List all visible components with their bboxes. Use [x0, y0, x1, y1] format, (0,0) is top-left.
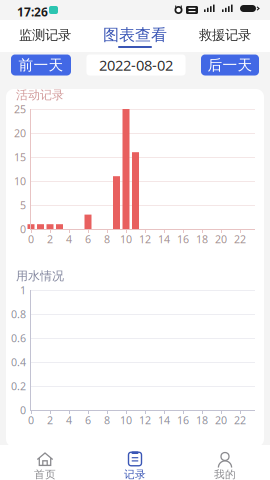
staticText: 记录: [124, 468, 146, 480]
staticText: 0: [28, 413, 34, 427]
staticText: 8: [104, 232, 110, 246]
staticText: 18: [196, 413, 208, 427]
staticText: 4: [66, 232, 72, 246]
staticText: 14: [158, 232, 170, 246]
staticText: 用水情况: [16, 269, 64, 283]
staticText: 图表查看: [103, 25, 167, 45]
staticText: 16: [177, 413, 189, 427]
staticText: 0.2: [11, 379, 26, 393]
staticText: 10: [120, 232, 132, 246]
staticText: 0.8: [11, 307, 26, 321]
button[interactable]: 救援记录: [180, 20, 270, 50]
staticText: 5: [20, 198, 26, 212]
staticText: 8: [104, 413, 110, 427]
button[interactable]: 前一天: [11, 54, 71, 75]
staticText: 17:26: [17, 4, 48, 20]
staticText: 0: [20, 403, 26, 417]
staticText: 2022-08-02: [99, 55, 173, 75]
staticText: 14: [158, 413, 170, 427]
staticText: 监测记录: [19, 27, 71, 43]
staticText: 12: [139, 232, 151, 246]
staticText: 首页: [34, 468, 56, 480]
staticText: 1: [20, 283, 26, 297]
staticText: 22: [234, 232, 246, 246]
staticText: 救援记录: [199, 27, 251, 43]
staticText: 12: [139, 413, 151, 427]
staticText: 20: [215, 413, 227, 427]
staticText: 22: [234, 413, 246, 427]
staticText: 20: [215, 232, 227, 246]
staticText: 2: [47, 232, 53, 246]
staticText: 15: [14, 150, 26, 164]
button[interactable]: 我的: [180, 452, 270, 480]
staticText: 18: [196, 232, 208, 246]
staticText: 10: [14, 174, 26, 188]
staticText: 6: [85, 413, 91, 427]
staticText: 我的: [214, 468, 236, 480]
staticText: 活动记录: [16, 88, 64, 102]
staticText: 前一天: [18, 56, 63, 74]
staticText: 4: [66, 413, 72, 427]
staticText: 10: [120, 413, 132, 427]
staticText: 0: [28, 232, 34, 246]
staticText: 0.6: [11, 331, 26, 345]
button[interactable]: 图表查看: [90, 20, 180, 50]
staticText: 0: [20, 222, 26, 236]
staticText: 25: [14, 102, 26, 116]
button[interactable]: 监测记录: [0, 20, 90, 50]
button[interactable]: 首页: [0, 452, 90, 480]
button[interactable]: 记录: [90, 452, 180, 480]
staticText: 20: [14, 126, 26, 140]
staticText: 6: [85, 232, 91, 246]
staticText: 后一天: [207, 56, 252, 74]
staticText: 2: [47, 413, 53, 427]
staticText: 16: [177, 232, 189, 246]
button[interactable]: 后一天: [201, 54, 259, 75]
staticText: 0.4: [11, 355, 26, 369]
